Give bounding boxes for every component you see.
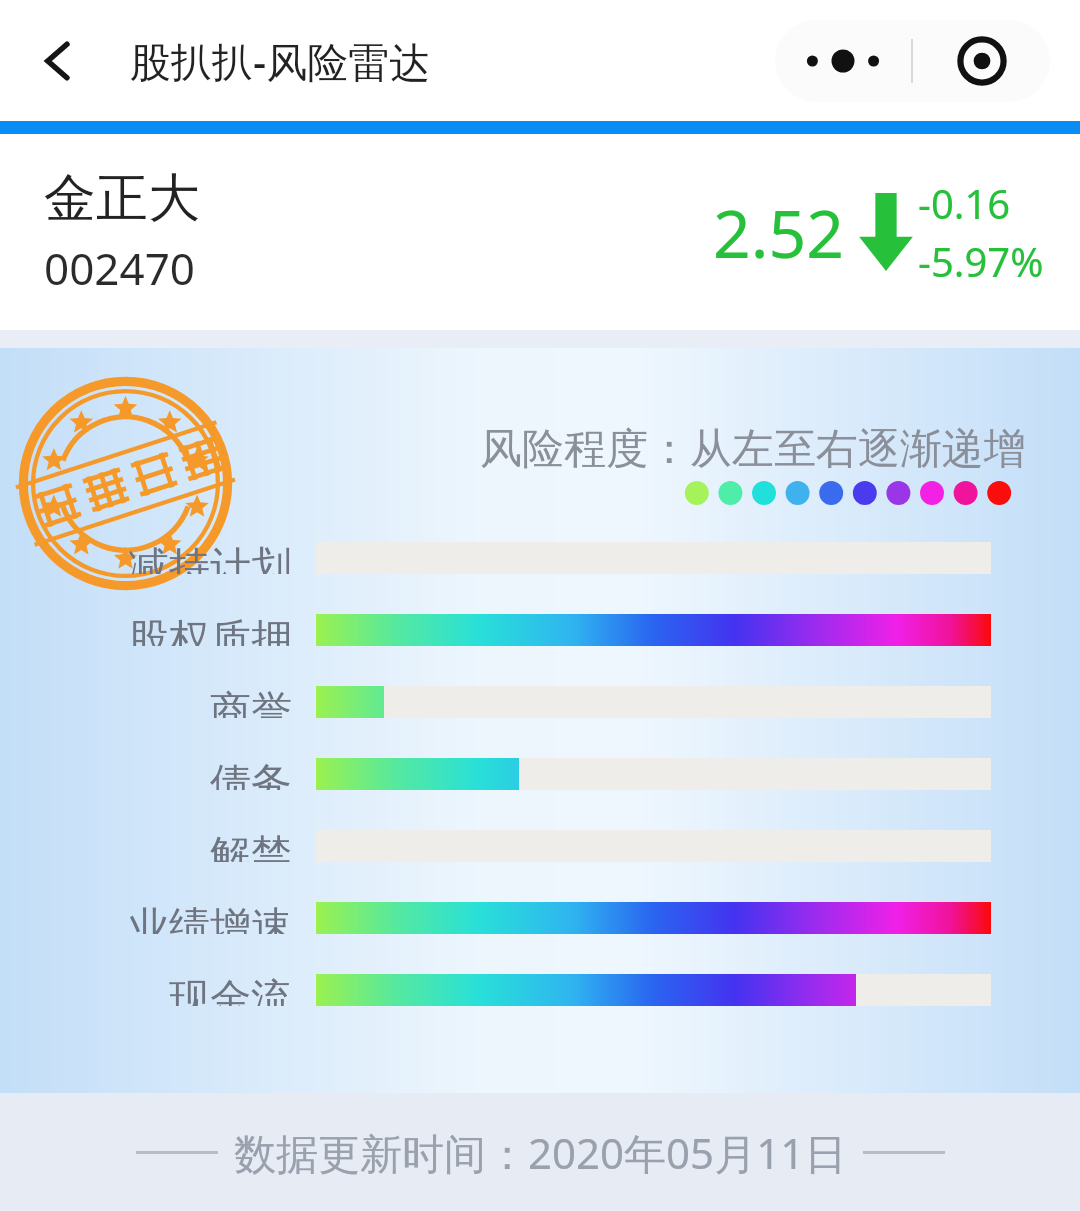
staticText: -5.97% xyxy=(918,234,1044,288)
staticText: 解禁 xyxy=(210,830,292,862)
button[interactable]: 业绩增速 xyxy=(0,902,1080,934)
button[interactable]: 现金流 xyxy=(0,974,1080,1006)
staticText: 002470 xyxy=(44,238,196,298)
staticText: 股扒扒-风险雷达 xyxy=(130,33,431,89)
button[interactable]: Mini program menu xyxy=(775,20,1050,102)
staticText: 数据更新时间：2020年05月11日 xyxy=(234,1124,847,1181)
button[interactable]: 债务 xyxy=(0,758,1080,790)
staticText: -0.16 xyxy=(918,176,1011,230)
button[interactable]: 解禁 xyxy=(0,830,1080,862)
staticText: 债务 xyxy=(210,758,292,790)
staticText: 风险程度：从左至右逐渐递增 xyxy=(480,423,1026,476)
staticText: 现金流 xyxy=(169,974,292,1006)
button[interactable]: Back xyxy=(34,31,82,91)
button[interactable]: 减持计划 xyxy=(0,542,1080,574)
staticText: 金正大 xyxy=(44,166,200,232)
button[interactable]: 股权质押 xyxy=(0,614,1080,646)
button[interactable]: 商誉 xyxy=(0,686,1080,718)
staticText: 股权质押 xyxy=(128,614,292,646)
staticText: 减持计划 xyxy=(128,542,292,574)
staticText: 业绩增速 xyxy=(128,902,292,934)
staticText: 商誉 xyxy=(210,686,292,718)
staticText: 2.52 xyxy=(713,187,844,277)
